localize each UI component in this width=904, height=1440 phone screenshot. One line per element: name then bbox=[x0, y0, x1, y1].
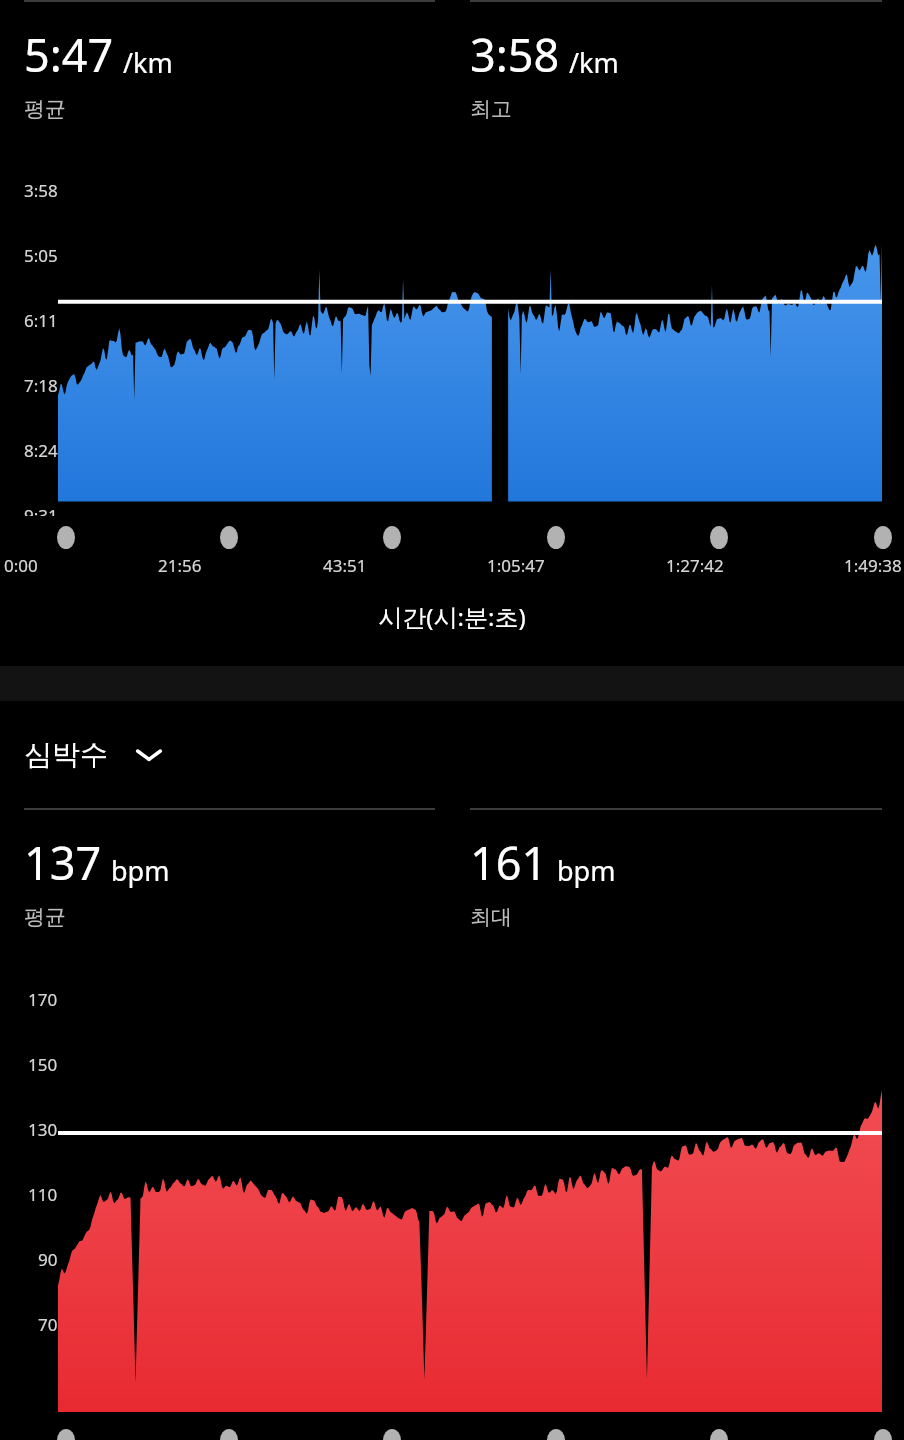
staticText: 43:51 bbox=[323, 554, 367, 577]
staticText: 150 bbox=[28, 1053, 58, 1076]
staticText: 5:47 bbox=[24, 24, 114, 85]
other: Expand heart rate bbox=[134, 745, 164, 765]
staticText: 1:05:47 bbox=[487, 554, 545, 577]
staticText: /km bbox=[569, 44, 619, 81]
staticText: 1:49:38 bbox=[844, 554, 902, 577]
staticText: 최고 bbox=[470, 96, 512, 122]
staticText: /km bbox=[123, 44, 173, 81]
staticText: 130 bbox=[28, 1118, 58, 1141]
staticText: 161 bbox=[470, 832, 548, 893]
staticText: 70 bbox=[38, 1313, 58, 1336]
staticText: bpm bbox=[557, 852, 616, 889]
staticText: 7:18 bbox=[24, 374, 58, 397]
staticText: 6:11 bbox=[24, 309, 58, 332]
staticText: bpm bbox=[111, 852, 170, 889]
staticText: 0:00 bbox=[4, 554, 38, 577]
staticText: 8:24 bbox=[24, 439, 58, 462]
staticText: 21:56 bbox=[158, 554, 202, 577]
staticText: 137 bbox=[24, 832, 102, 893]
staticText: 9:31 bbox=[24, 504, 58, 516]
staticText: 90 bbox=[38, 1248, 58, 1271]
staticText: 심박수 bbox=[24, 737, 108, 772]
staticText: 시간(시:분:초) bbox=[0, 600, 904, 633]
staticText: 170 bbox=[28, 988, 58, 1011]
staticText: 3:58 bbox=[470, 24, 560, 85]
staticText: 평균 bbox=[24, 96, 66, 122]
staticText: 110 bbox=[28, 1183, 58, 1206]
staticText: 1:27:42 bbox=[666, 554, 724, 577]
staticText: 평균 bbox=[24, 904, 66, 930]
staticText: 최대 bbox=[470, 904, 512, 930]
staticText: 5:05 bbox=[24, 244, 58, 267]
button[interactable]: 심박수 bbox=[24, 733, 178, 776]
staticText: 3:58 bbox=[24, 179, 58, 202]
